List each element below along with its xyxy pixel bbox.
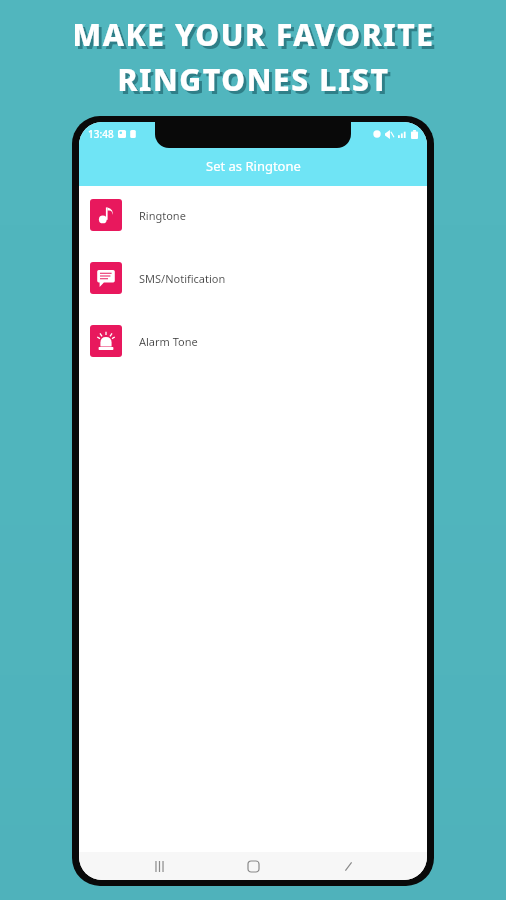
staticText: Ringtone [139,208,186,223]
staticText: RINGTONES LIST [117,59,390,100]
staticText: RINGTONES LIST [120,62,393,103]
staticText: 13:48 [88,127,114,141]
button[interactable]: SMS/Notification [79,261,427,295]
button[interactable]: Recents [144,852,174,880]
staticText: Alarm Tone [139,334,198,349]
button[interactable]: Ringtone [79,198,427,232]
staticText: Set as Ringtone [206,157,301,175]
staticText: MAKE YOUR FAVORITE [72,14,435,55]
button[interactable]: Alarm Tone [79,324,427,358]
button[interactable]: Back [333,852,363,880]
staticText: SMS/Notification [139,271,226,286]
button[interactable]: Home [238,852,268,880]
staticText: MAKE YOUR FAVORITE [75,17,438,58]
